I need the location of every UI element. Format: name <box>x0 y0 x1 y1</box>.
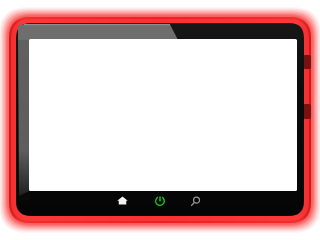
button[interactable]: Home <box>108 190 136 212</box>
button[interactable]: Power <box>146 190 174 212</box>
button[interactable]: Search <box>184 190 212 212</box>
